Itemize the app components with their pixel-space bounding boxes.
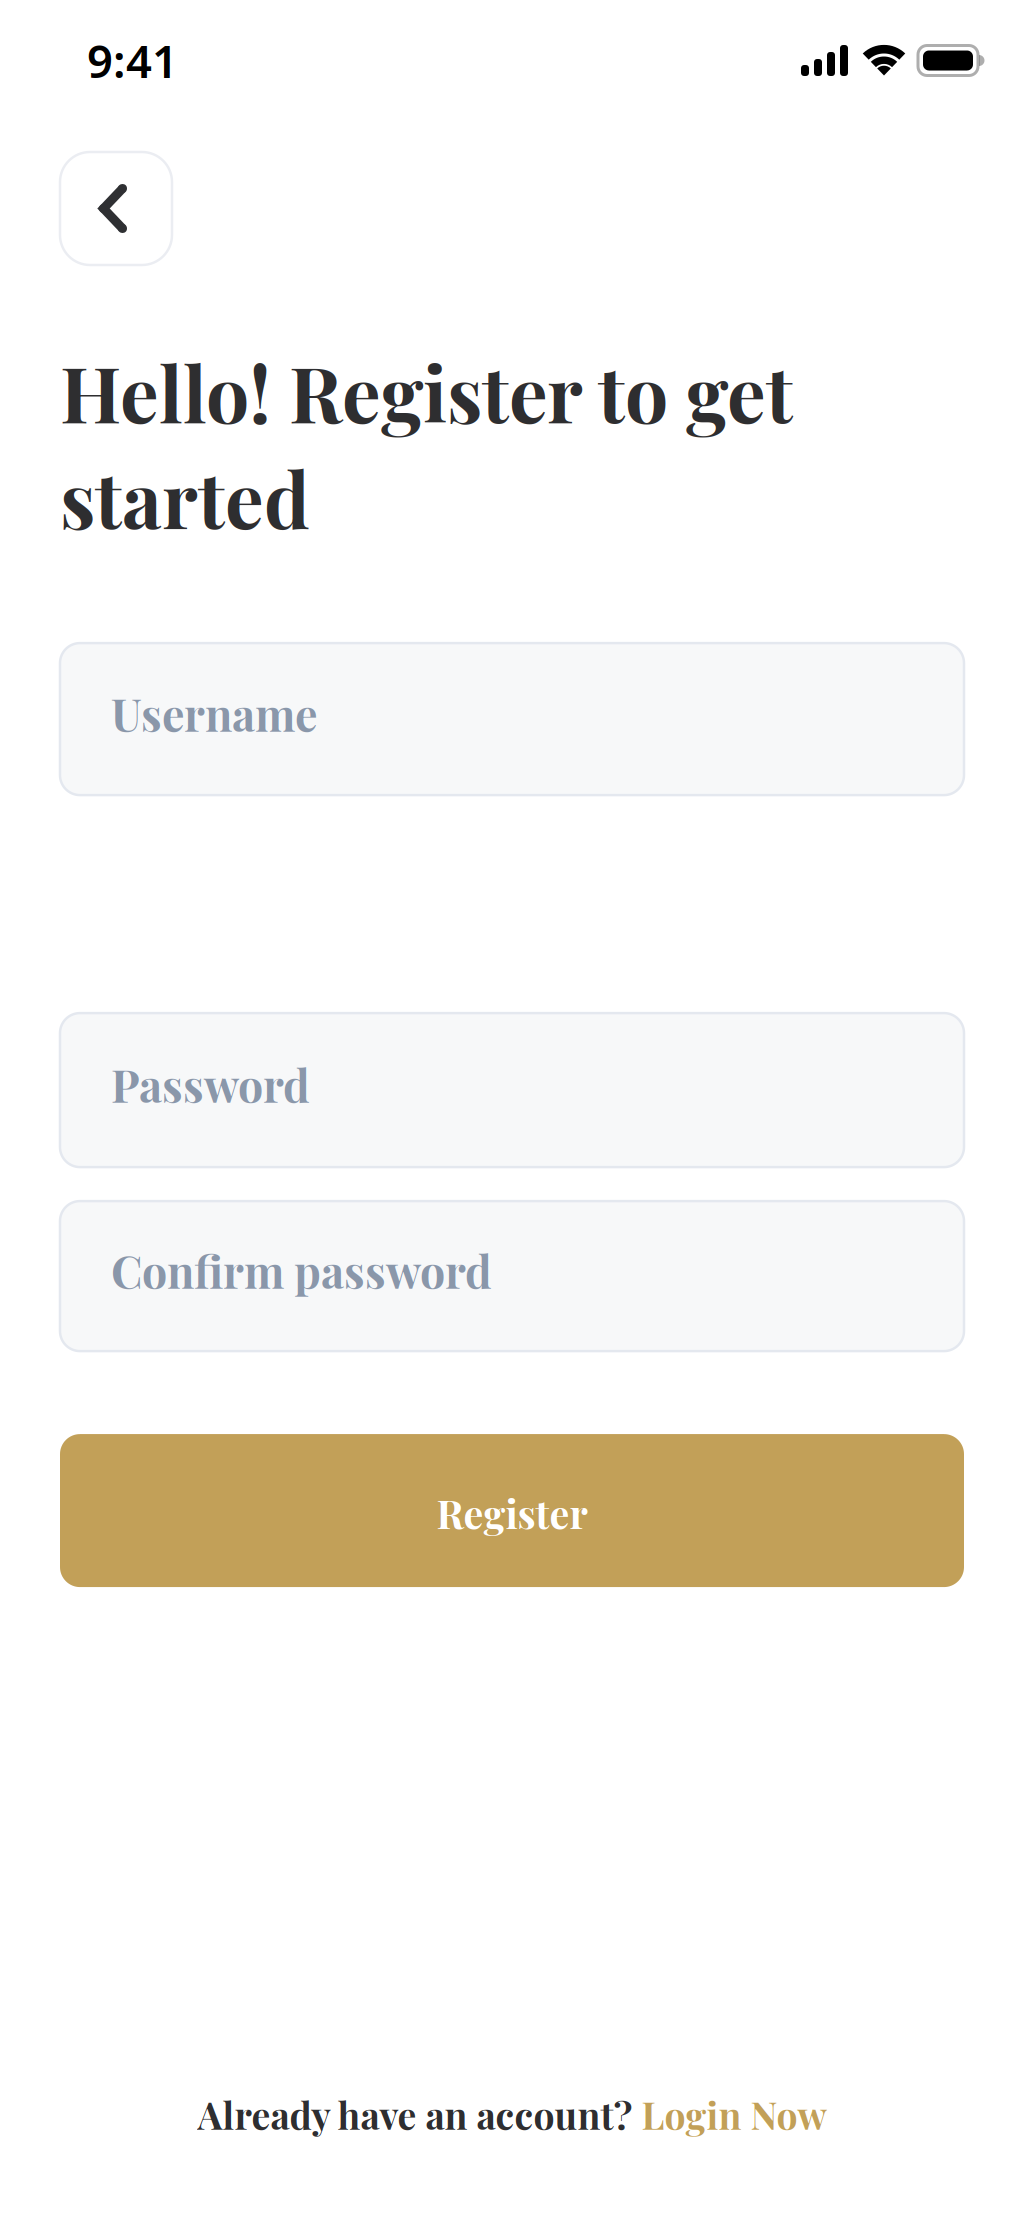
staticText: 9:41 bbox=[87, 30, 178, 91]
button[interactable]: Confirm password bbox=[60, 1201, 964, 1351]
staticText: Password bbox=[111, 1054, 310, 1114]
button[interactable]: Register bbox=[60, 1434, 964, 1587]
staticText: Already have an account? bbox=[197, 2089, 641, 2139]
button[interactable]: Username bbox=[60, 643, 964, 795]
staticText: Username bbox=[111, 683, 318, 743]
staticText: Register bbox=[436, 1486, 587, 1539]
staticText: Hello! Register to get started bbox=[60, 340, 792, 548]
button[interactable]: Password bbox=[60, 1013, 964, 1167]
button[interactable]: Login Now bbox=[641, 2089, 826, 2139]
staticText: Confirm password bbox=[111, 1240, 492, 1300]
button[interactable]: Back bbox=[60, 152, 172, 265]
staticText: Login Now bbox=[641, 2089, 826, 2139]
